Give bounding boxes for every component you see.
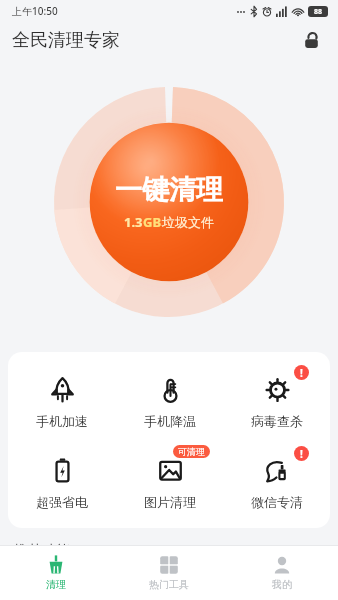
staticText: 可清理 — [178, 446, 205, 457]
staticText: ! — [300, 447, 303, 461]
button[interactable]: 可清理 — [116, 449, 223, 512]
staticText: 推荐功能 — [14, 542, 70, 560]
staticText: 清理 — [46, 578, 66, 591]
button[interactable]: 手机加速 — [8, 368, 116, 431]
button[interactable]: 手机降温 — [116, 368, 223, 431]
staticText: 手机加速 — [36, 413, 88, 429]
button[interactable]: ! — [223, 368, 330, 431]
button[interactable]: ! — [223, 449, 330, 512]
staticText: 超强省电 — [36, 494, 88, 510]
staticText: 全民清理专家 — [12, 29, 120, 52]
button[interactable]: 一键清理 — [54, 87, 284, 317]
staticText: 一键清理 — [115, 173, 223, 207]
staticText: 手机降温 — [144, 413, 196, 429]
staticText: 病毒查杀 — [251, 413, 303, 429]
button[interactable]: 我的 — [225, 546, 338, 600]
staticText: 我的 — [272, 578, 292, 591]
staticText: 图片清理 — [144, 494, 196, 510]
staticText: 上午10:50 — [12, 4, 58, 18]
staticText: 1.3 — [124, 213, 143, 231]
button[interactable]: 超强省电 — [8, 449, 116, 512]
button[interactable]: Security lock — [296, 25, 326, 55]
button[interactable]: 清理 — [0, 546, 112, 600]
staticText: 微信专清 — [251, 494, 303, 510]
staticText: ! — [300, 366, 303, 380]
staticText: GB — [143, 213, 162, 231]
button[interactable]: 热门工具 — [112, 546, 225, 600]
staticText: 垃圾文件 — [162, 214, 214, 230]
staticText: 热门工具 — [149, 578, 189, 591]
staticText: 88 — [314, 7, 323, 17]
